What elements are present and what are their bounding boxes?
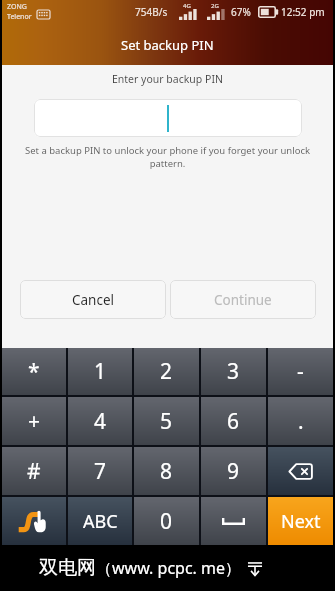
staticText: 5	[160, 407, 173, 436]
staticText: ZONG	[7, 2, 27, 12]
button[interactable]: Continue	[170, 280, 316, 319]
staticText: 12:52 pm	[281, 5, 325, 19]
button[interactable]: Swipe input	[2, 497, 66, 545]
button[interactable]: 6	[201, 397, 266, 445]
button[interactable]: 0	[134, 497, 199, 545]
staticText: Set a backup PIN to unlock your phone if…	[23, 144, 312, 170]
staticText: Next	[281, 509, 321, 534]
button[interactable]: 3	[201, 348, 266, 395]
staticText: *	[28, 357, 40, 386]
button[interactable]: 7	[68, 447, 132, 495]
button[interactable]: *	[2, 348, 66, 395]
button[interactable]: ABC	[68, 497, 132, 545]
staticText: Set backup PIN	[121, 36, 214, 54]
staticText: 2G	[211, 2, 219, 10]
button[interactable]: Next	[268, 497, 333, 545]
button[interactable]: .	[268, 397, 333, 445]
staticText: -	[297, 357, 304, 386]
button[interactable]: Backspace	[268, 447, 333, 495]
staticText: （www. pcpc. me）	[96, 557, 242, 579]
button[interactable]: +	[2, 397, 66, 445]
staticText: 754B/s	[135, 5, 168, 19]
staticText: 7	[94, 457, 107, 486]
staticText: Cancel	[72, 291, 115, 309]
staticText: Telenor	[7, 12, 32, 22]
staticText: ABC	[83, 509, 118, 534]
staticText: Continue	[214, 291, 272, 309]
button[interactable]: 9	[201, 447, 266, 495]
staticText: 1	[94, 357, 107, 386]
staticText: 4G	[183, 2, 191, 10]
button[interactable]	[34, 99, 302, 137]
button[interactable]: 1	[68, 348, 132, 395]
button[interactable]: #	[2, 447, 66, 495]
button[interactable]: 5	[134, 397, 199, 445]
staticText: +	[28, 407, 41, 436]
staticText: 9	[227, 457, 240, 486]
staticText: 双电网	[39, 556, 96, 580]
staticText: #	[27, 457, 41, 486]
staticText: 0	[160, 507, 173, 536]
staticText: .	[298, 407, 304, 436]
button[interactable]: 2	[134, 348, 199, 395]
staticText: Enter your backup PIN	[112, 72, 223, 86]
staticText: 8	[160, 457, 173, 486]
button[interactable]: -	[268, 348, 333, 395]
staticText: 2	[160, 357, 173, 386]
staticText: 4	[94, 407, 107, 436]
button[interactable]: 4	[68, 397, 132, 445]
button[interactable]: 8	[134, 447, 199, 495]
staticText: 67%	[231, 5, 251, 19]
staticText: 6	[227, 407, 240, 436]
staticText: 3	[227, 357, 240, 386]
button[interactable]: Space	[201, 497, 266, 545]
button[interactable]: Cancel	[20, 280, 166, 319]
